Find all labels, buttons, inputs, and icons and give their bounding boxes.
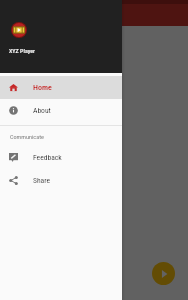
button[interactable]: Home [0, 76, 122, 99]
staticText: Share [33, 176, 51, 185]
staticText: About [33, 106, 51, 115]
button[interactable]: About [0, 99, 122, 122]
staticText: Feedback [33, 153, 62, 162]
button[interactable]: Share [0, 169, 122, 192]
staticText: Communicate [10, 133, 44, 140]
staticText: XYZ Player [9, 47, 36, 54]
button[interactable]: Feedback [0, 146, 122, 169]
button[interactable]: Play [152, 262, 175, 285]
staticText: Home [33, 83, 52, 92]
